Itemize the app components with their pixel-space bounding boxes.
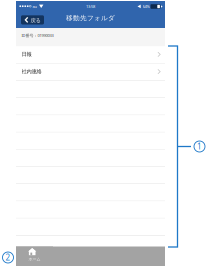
staticText: au bbox=[32, 4, 36, 9]
staticText: 社内連絡 bbox=[21, 68, 41, 75]
staticText: 日報 bbox=[21, 51, 31, 57]
staticText: 2 bbox=[5, 252, 10, 263]
staticText: 1 bbox=[197, 141, 202, 152]
staticText: 移動先フォルダ bbox=[66, 14, 115, 22]
button[interactable]: 戻る bbox=[21, 15, 44, 24]
staticText: 13:58 bbox=[86, 4, 95, 9]
staticText: ホーム bbox=[28, 257, 40, 261]
button[interactable]: 日報 bbox=[16, 46, 165, 64]
button[interactable]: ホーム bbox=[16, 246, 53, 266]
staticText: 64% bbox=[142, 4, 149, 9]
staticText: ID番号：01990033 bbox=[21, 33, 53, 38]
staticText: 戻る bbox=[31, 17, 41, 24]
button[interactable]: 社内連絡 bbox=[16, 64, 165, 81]
